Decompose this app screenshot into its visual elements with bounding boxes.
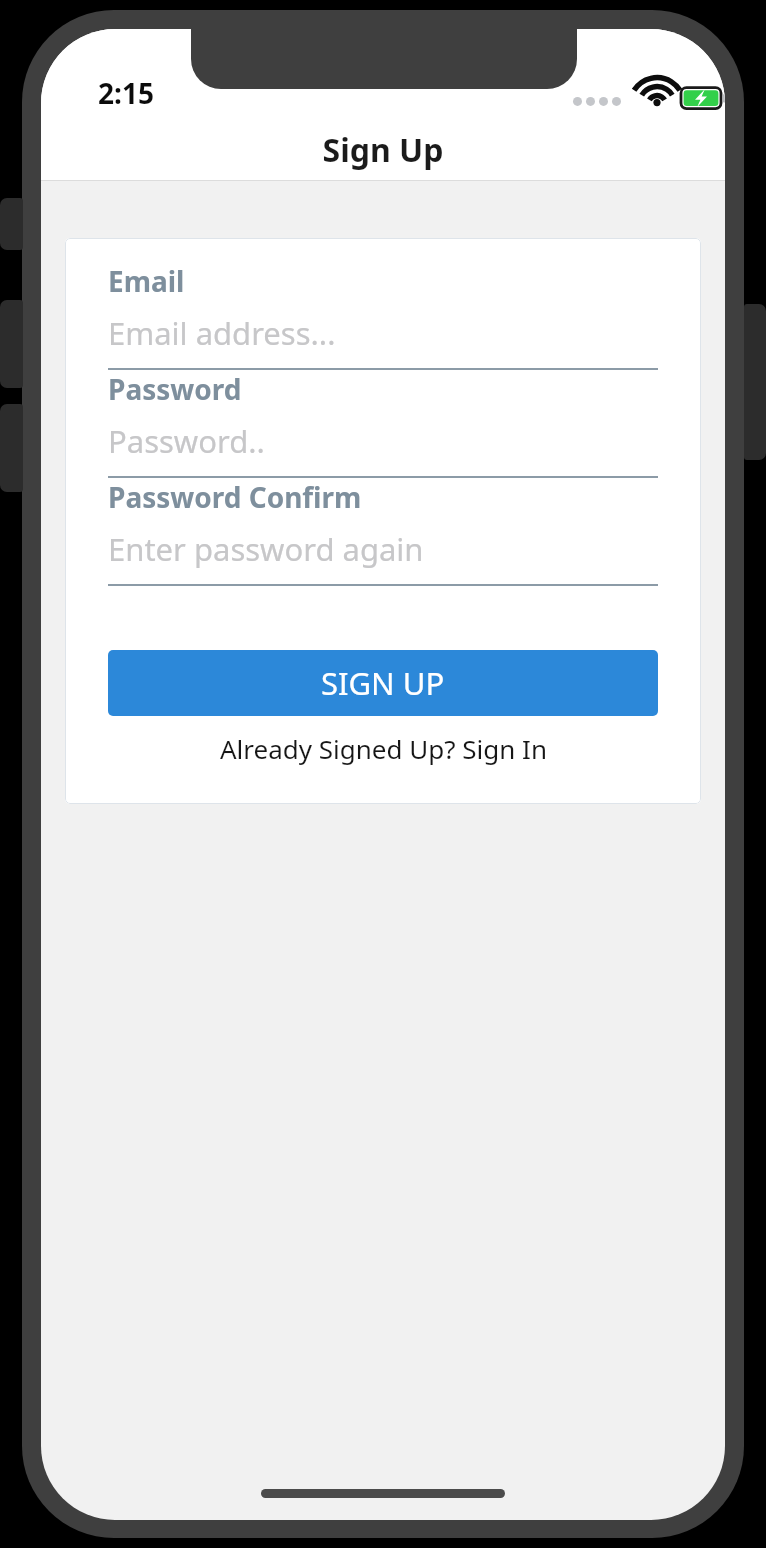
other: Status icons — [573, 79, 705, 111]
staticText: Enter password again — [108, 528, 424, 570]
staticText: Email address... — [108, 312, 336, 354]
staticText: Password.. — [108, 420, 265, 462]
button[interactable]: Already Signed Up? Sign In — [108, 716, 658, 780]
staticText: Password Confirm — [108, 478, 362, 516]
button[interactable]: Password Confirm — [108, 478, 658, 586]
staticText: Email — [108, 262, 185, 300]
staticText: Sign Up — [41, 128, 725, 172]
staticText: Already Signed Up? Sign In — [220, 731, 547, 766]
button[interactable]: Password — [108, 370, 658, 478]
button[interactable]: Email — [108, 262, 658, 370]
staticText: Password — [108, 370, 242, 408]
button[interactable]: SIGN UP — [108, 650, 658, 716]
staticText: SIGN UP — [321, 662, 445, 704]
staticText: 2:15 — [98, 74, 154, 112]
